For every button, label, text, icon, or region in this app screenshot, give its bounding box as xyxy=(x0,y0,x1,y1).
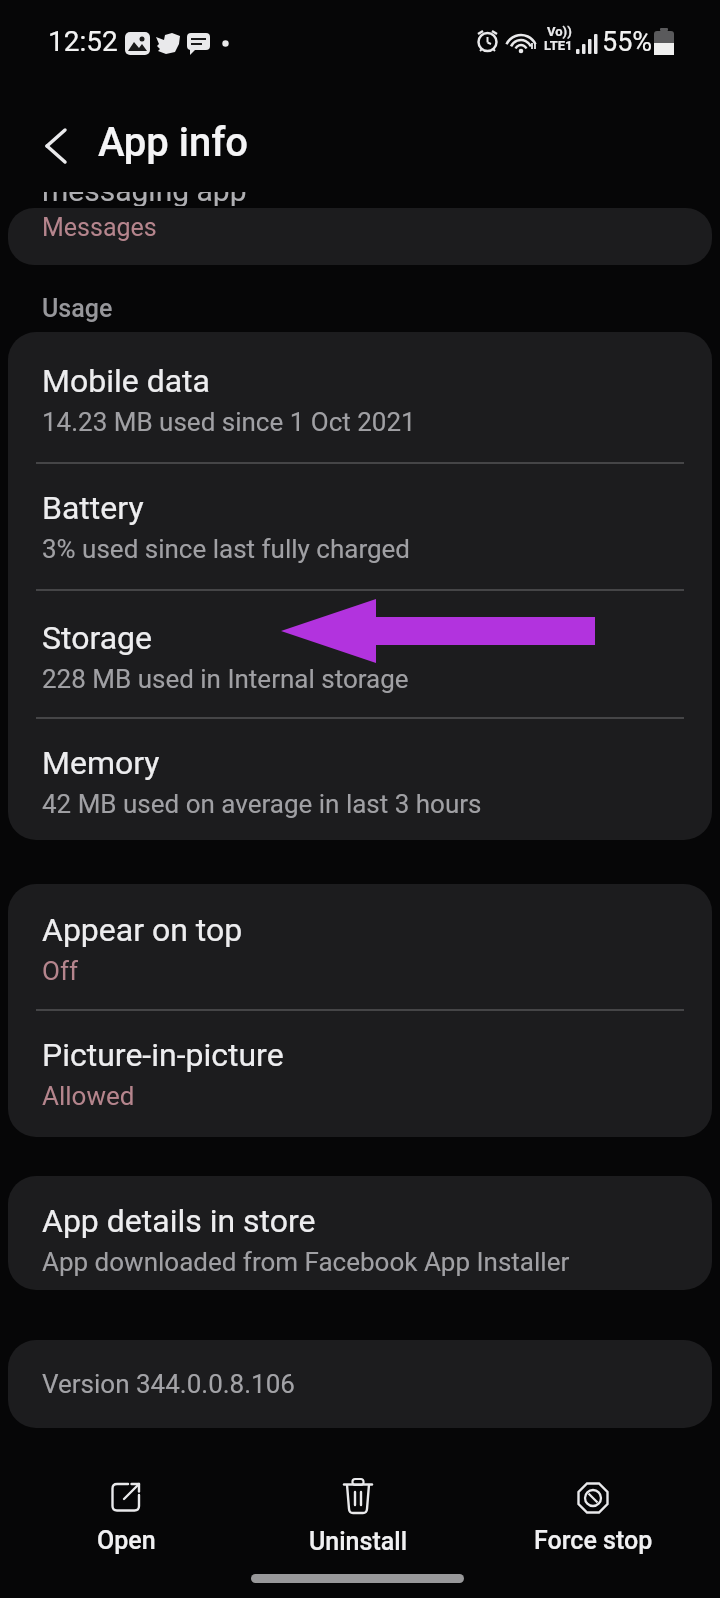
staticText: Off xyxy=(42,956,78,986)
button[interactable]: Battery xyxy=(42,489,410,564)
staticText: Usage xyxy=(42,294,113,323)
staticText: Memory xyxy=(42,744,160,782)
staticText: messaging app xyxy=(42,192,247,206)
staticText: Vo)) xyxy=(547,24,572,39)
staticText: App downloaded from Facebook App Install… xyxy=(42,1247,570,1277)
staticText: 14.23 MB used since 1 Oct 2021 xyxy=(42,407,416,437)
button[interactable] xyxy=(44,128,68,164)
staticText: Picture-in-picture xyxy=(42,1036,284,1074)
staticText: Version 344.0.0.8.106 xyxy=(42,1369,295,1399)
button[interactable]: Storage xyxy=(42,619,409,694)
staticText: 42 MB used on average in last 3 hours xyxy=(42,789,482,819)
staticText: App details in store xyxy=(42,1202,316,1240)
staticText: Messages xyxy=(42,213,157,242)
staticText: 55% xyxy=(602,26,653,58)
staticText: App info xyxy=(98,119,249,166)
button[interactable]: Memory xyxy=(42,744,482,819)
staticText: Force stop xyxy=(534,1526,653,1555)
staticText: Mobile data xyxy=(42,362,210,400)
staticText: Allowed xyxy=(42,1081,135,1111)
staticText: Uninstall xyxy=(309,1527,408,1556)
button[interactable]: App details in store xyxy=(42,1202,570,1277)
button[interactable]: App details in store xyxy=(8,1176,712,1290)
button[interactable]: Open xyxy=(56,1482,196,1555)
button[interactable]: Picture-in-picture xyxy=(42,1036,284,1111)
button[interactable]: Force stop xyxy=(523,1482,663,1555)
staticText: 3% used since last fully charged xyxy=(42,534,410,564)
staticText: Storage xyxy=(42,619,152,657)
staticText: 12:52 xyxy=(48,25,118,58)
button[interactable]: Appear on top xyxy=(42,911,243,986)
staticText: Open xyxy=(97,1526,156,1555)
staticText: 228 MB used in Internal storage xyxy=(42,664,409,694)
button[interactable]: Messages xyxy=(8,208,712,265)
staticText: Battery xyxy=(42,489,144,527)
staticText: LTE1 xyxy=(544,38,573,53)
button[interactable]: Mobile data xyxy=(42,362,416,437)
staticText: Appear on top xyxy=(42,911,243,949)
button[interactable]: Uninstall xyxy=(288,1479,428,1556)
